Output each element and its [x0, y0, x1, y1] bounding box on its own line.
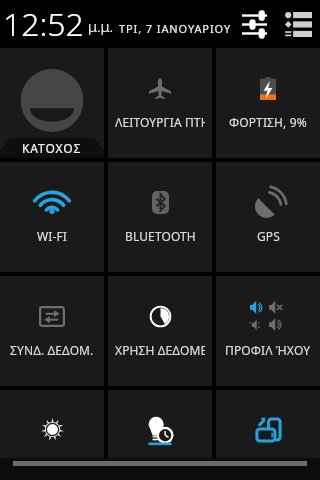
staticText: ΦΟΡΤΙΣΗ, 9% [229, 114, 307, 130]
button[interactable]: ΧΡΗΣΗ ΔΕΔΟΜΕΝΩΝ [108, 276, 212, 386]
staticText: 12:52 [3, 2, 84, 46]
button[interactable]: ΠΡΟΦΙΛ ΉΧΟΥ [216, 276, 320, 386]
staticText: ΛΕΙΤΟΥΡΓΙΑ ΠΤΗΣΗΣ [115, 114, 205, 130]
button[interactable]: WI-FI [0, 162, 104, 272]
button[interactable]: ΣΥΝΔ. ΔΕΔΟΜ. [0, 276, 104, 386]
staticText: μ.μ. [88, 16, 114, 36]
staticText: ΧΡΗΣΗ ΔΕΔΟΜΕΝΩΝ [115, 342, 205, 358]
button[interactable]: BLUETOOTH [108, 162, 212, 272]
staticText: ΚΑΤΟΧΟΣ [22, 140, 82, 156]
button[interactable]: ΚΑΤΟΧΟΣ [0, 48, 104, 158]
button[interactable]: Auto rotate screen [216, 390, 320, 458]
button[interactable]: GPS [216, 162, 320, 272]
button[interactable]: ΛΕΙΤΟΥΡΓΙΑ ΠΤΗΣΗΣ [108, 48, 212, 158]
staticText: ΤΡΙ, 7 ΙΑΝΟΥΑΡΙΟΥ [119, 21, 232, 36]
staticText: GPS [257, 228, 280, 244]
button[interactable]: Brightness [0, 390, 104, 458]
staticText: WI-FI [37, 228, 67, 244]
button[interactable]: Screen timeout [108, 390, 212, 458]
staticText: BLUETOOTH [125, 228, 196, 244]
button[interactable]: Notifications [282, 8, 314, 40]
staticText: ΠΡΟΦΙΛ ΉΧΟΥ [225, 342, 311, 358]
button[interactable]: ΦΟΡΤΙΣΗ, 9% [216, 48, 320, 158]
button[interactable]: Quick settings [237, 7, 271, 41]
staticText: ΣΥΝΔ. ΔΕΔΟΜ. [10, 342, 94, 358]
